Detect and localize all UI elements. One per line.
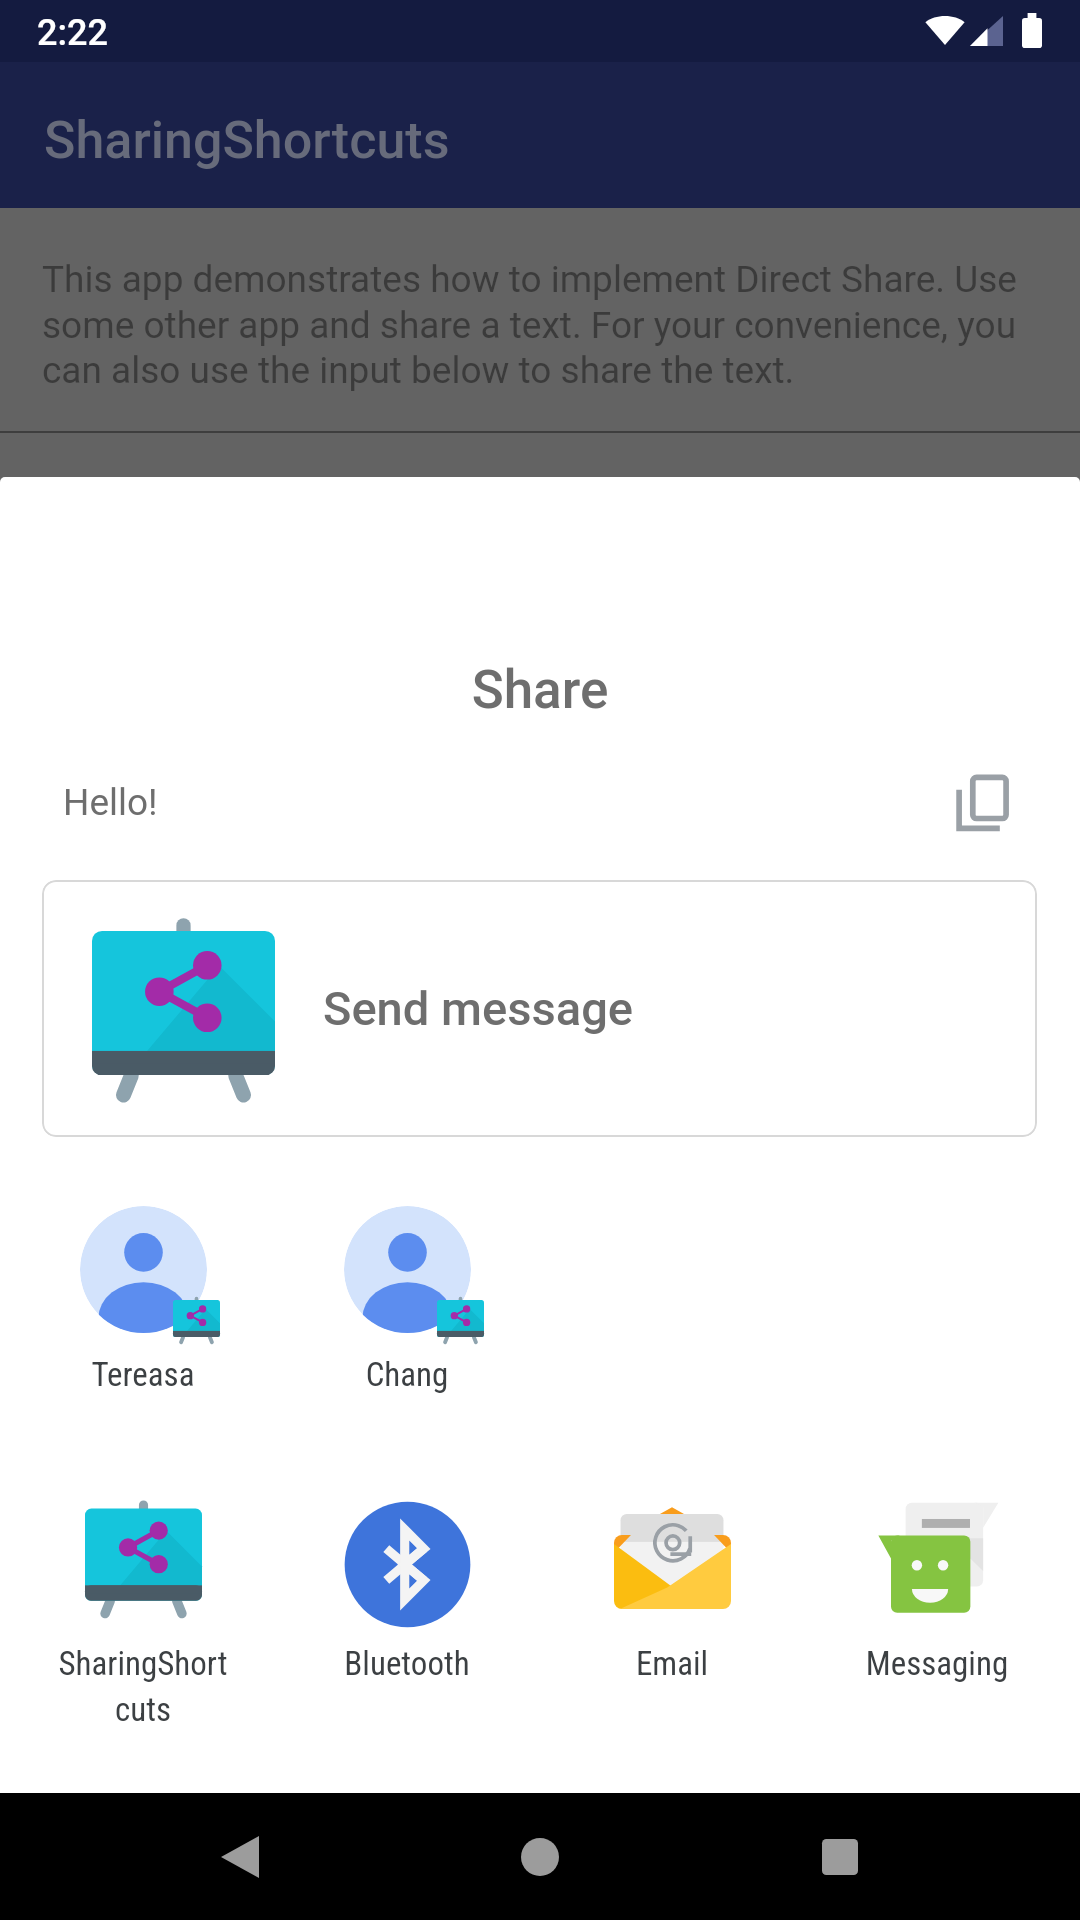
staticText: SharingShortcuts: [44, 110, 450, 171]
button[interactable]: Back: [180, 1793, 300, 1920]
button[interactable]: Messaging: [804, 1501, 1069, 1683]
button[interactable]: Home: [480, 1793, 600, 1920]
button[interactable]: Tereasa: [11, 1206, 275, 1394]
staticText: Messaging: [849, 1644, 1025, 1683]
button[interactable]: Email: [539, 1501, 804, 1683]
staticText: Share: [0, 659, 1080, 721]
staticText: Bluetooth: [319, 1644, 495, 1683]
staticText: Tereasa: [55, 1355, 231, 1394]
button[interactable]: Recents: [780, 1793, 900, 1920]
button[interactable]: Send message: [42, 880, 1037, 1137]
staticText: Send message: [323, 981, 634, 1036]
staticText: Hello!: [63, 781, 158, 824]
button[interactable]: Bluetooth: [275, 1501, 539, 1683]
button[interactable]: SharingShortcuts: [11, 1501, 275, 1729]
staticText: 2:22: [37, 12, 108, 54]
button[interactable]: Copy: [926, 745, 1040, 859]
staticText: Chang: [319, 1355, 495, 1394]
staticText: SharingShortcuts: [55, 1644, 231, 1729]
button[interactable]: Chang: [275, 1206, 539, 1394]
staticText: This app demonstrates how to implement D…: [42, 258, 1042, 392]
staticText: Email: [584, 1644, 760, 1683]
